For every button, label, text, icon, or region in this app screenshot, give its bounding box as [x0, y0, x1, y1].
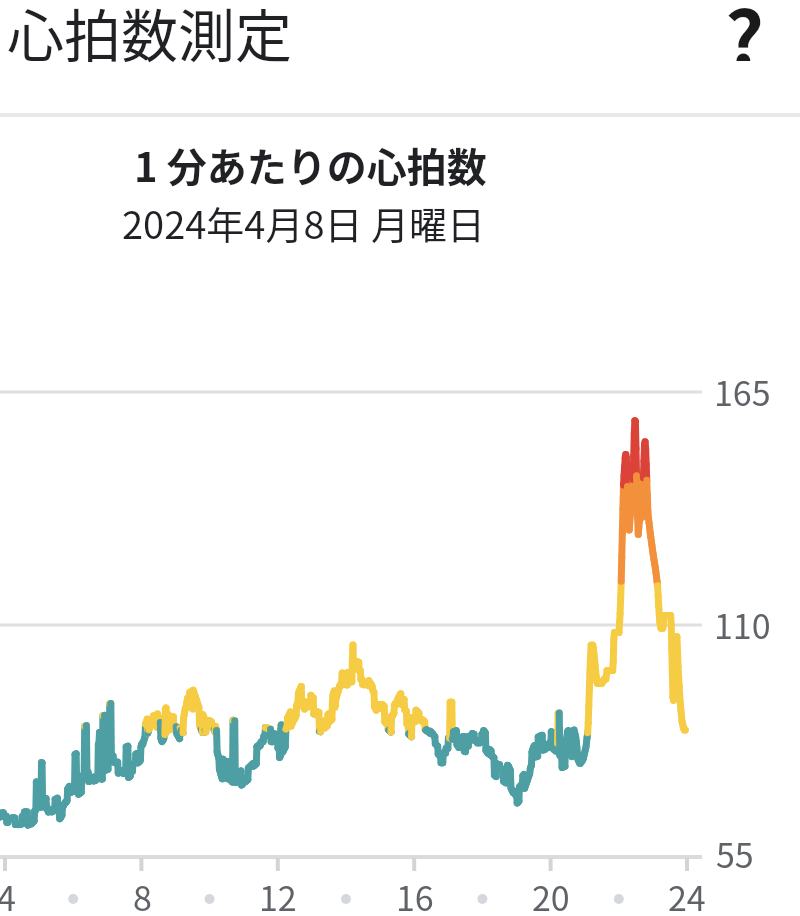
staticText: 心拍数測定: [7, 0, 292, 74]
button[interactable]: Help: [704, 0, 786, 61]
staticText: ?: [725, 0, 765, 61]
staticText: 4: [0, 872, 16, 916]
staticText: 12: [259, 872, 297, 916]
staticText: 8: [133, 872, 152, 916]
staticText: 55: [716, 829, 754, 878]
staticText: 24: [668, 872, 706, 916]
staticText: 16: [396, 872, 434, 916]
staticText: 165: [714, 367, 771, 416]
staticText: 110: [714, 600, 771, 649]
staticText: 20: [532, 872, 570, 916]
staticText: 2024年4月8日 月曜日: [122, 195, 486, 250]
staticText: 1 分あたりの心拍数: [134, 136, 487, 194]
